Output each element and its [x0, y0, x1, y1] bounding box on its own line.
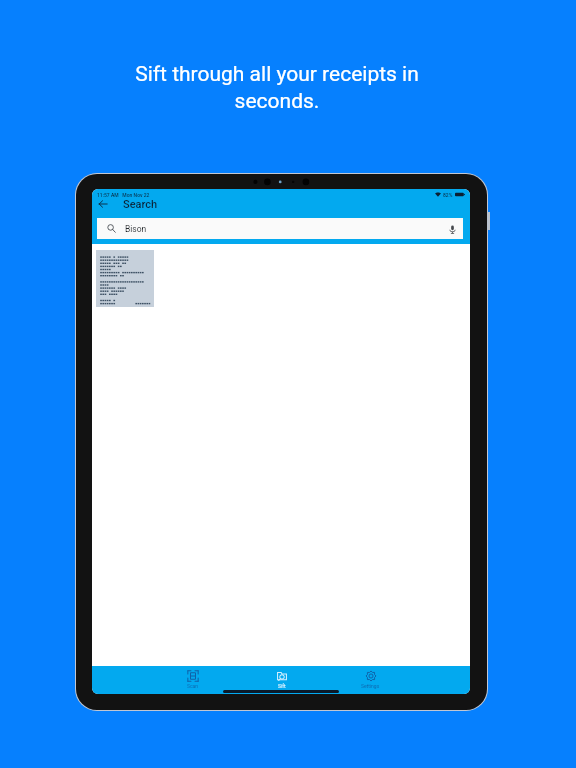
button[interactable]: Receipt from Bison C Store: [96, 250, 154, 307]
button[interactable]: Bison: [97, 218, 463, 239]
button[interactable]: Settings: [326, 666, 415, 694]
button[interactable]: Back: [92, 195, 114, 213]
staticText: Sift: [278, 683, 286, 689]
button[interactable]: Sift: [237, 666, 326, 694]
staticText: Settings: [361, 683, 380, 689]
staticText: Bison: [125, 224, 147, 234]
staticText: Sift through all your receipts in second…: [121, 62, 433, 113]
staticText: 82%: [443, 192, 453, 198]
staticText: Search: [123, 198, 158, 211]
button[interactable]: Voice search: [445, 222, 459, 236]
button[interactable]: Scan: [148, 666, 237, 694]
staticText: Scan: [187, 683, 199, 689]
staticText: 11:57 AM Mon Nov 22: [97, 192, 150, 198]
